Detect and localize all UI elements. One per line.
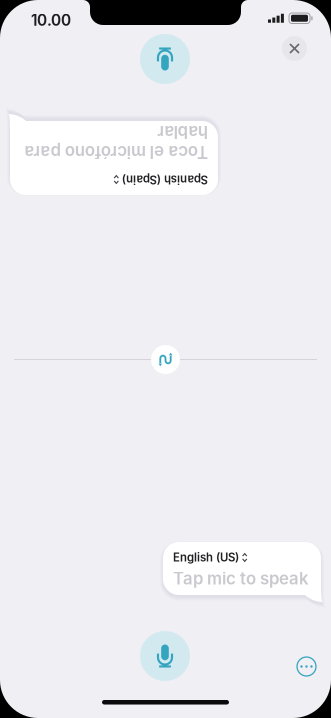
button[interactable]: Microphone, Spanish (140, 34, 190, 84)
button[interactable]: Swap languages (151, 345, 180, 374)
staticText: Toca el micrófono para (20, 147, 204, 167)
staticText: 10.00 (31, 11, 71, 30)
button[interactable]: Close (282, 36, 307, 61)
staticText: Tap mic to speak (173, 568, 308, 589)
button[interactable]: Microphone, English (140, 631, 190, 681)
button[interactable]: More options (296, 656, 317, 677)
staticText: English (US) (173, 551, 239, 564)
